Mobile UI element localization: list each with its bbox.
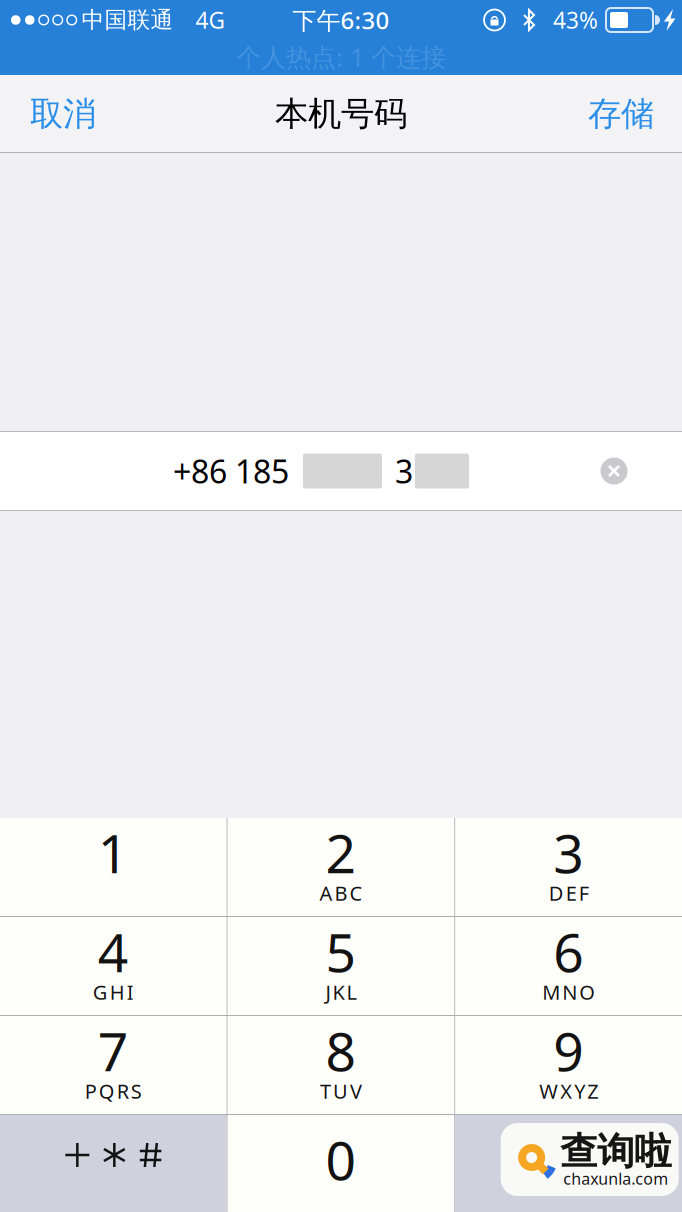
- button[interactable]: Plus, star, pound: [0, 1115, 227, 1212]
- staticText: M N O: [542, 979, 595, 1005]
- button[interactable]: 取消: [0, 75, 126, 153]
- staticText: 5: [325, 916, 356, 987]
- staticText: J K L: [325, 979, 356, 1005]
- staticText: 1: [98, 817, 129, 888]
- staticText: 9: [553, 1015, 584, 1086]
- button[interactable]: 2: [228, 818, 454, 916]
- staticText: 下午6:30: [292, 4, 389, 36]
- staticText: D E F: [549, 880, 589, 906]
- staticText: 2: [325, 817, 356, 888]
- staticText: 中国联通: [81, 6, 173, 34]
- staticText: 6: [553, 916, 584, 987]
- button[interactable]: 存储: [558, 75, 682, 153]
- staticText: 本机号码: [275, 93, 407, 134]
- staticText: P Q R S: [85, 1078, 142, 1104]
- staticText: 取消: [30, 93, 96, 134]
- staticText: T U V: [320, 1078, 362, 1104]
- staticText: A B C: [319, 880, 362, 906]
- button[interactable]: Clear text: [586, 443, 642, 499]
- staticText: 查询啦: [560, 1129, 671, 1174]
- staticText: +86 185: [173, 450, 289, 492]
- button[interactable]: 1: [0, 818, 227, 916]
- staticText: 个人热点: 1 个连接: [236, 40, 446, 74]
- button[interactable]: 5: [228, 917, 454, 1015]
- staticText: W X Y Z: [539, 1078, 598, 1104]
- button[interactable]: 0: [228, 1115, 454, 1212]
- staticText: G H I: [93, 979, 134, 1005]
- staticText: chaxunla.com: [563, 1168, 668, 1189]
- staticText: 存储: [588, 93, 654, 134]
- staticText: 8: [325, 1015, 356, 1086]
- button[interactable]: 9: [455, 1016, 682, 1114]
- staticText: 0: [325, 1124, 356, 1195]
- staticText: 4: [98, 916, 129, 987]
- staticText: 4G: [195, 5, 225, 35]
- staticText: 3: [553, 817, 584, 888]
- staticText: 3: [395, 450, 413, 492]
- staticText: 43%: [553, 5, 598, 35]
- button[interactable]: 3: [455, 818, 682, 916]
- button[interactable]: 4: [0, 917, 227, 1015]
- staticText: 7: [98, 1015, 129, 1086]
- button[interactable]: 6: [455, 917, 682, 1015]
- button[interactable]: Delete: [455, 1115, 682, 1212]
- button[interactable]: 8: [228, 1016, 454, 1114]
- button[interactable]: 7: [0, 1016, 227, 1114]
